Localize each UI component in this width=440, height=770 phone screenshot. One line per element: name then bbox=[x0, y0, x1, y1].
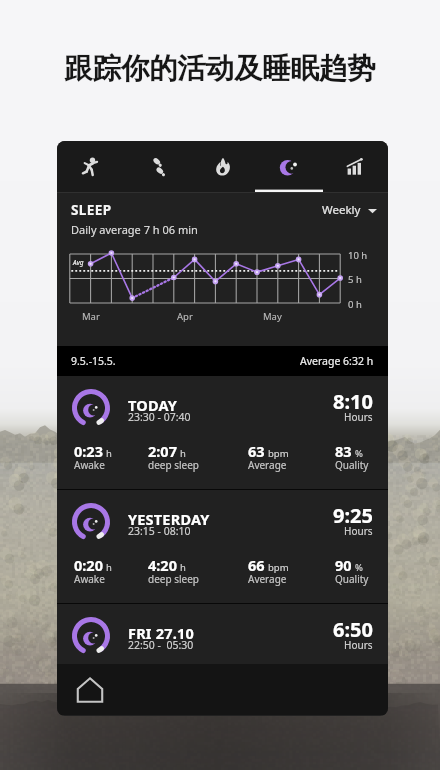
button[interactable]: Steps bbox=[124, 141, 190, 193]
button[interactable]: Calories bbox=[190, 141, 256, 193]
button[interactable]: 9.5.-15.5. bbox=[57, 346, 388, 376]
staticText: 6:50 bbox=[333, 616, 373, 643]
staticText: TODAY bbox=[128, 395, 178, 415]
staticText: May bbox=[263, 310, 282, 323]
button[interactable]: Trends bbox=[322, 141, 388, 193]
staticText: 4:20 bbox=[148, 555, 177, 575]
staticText: Hours bbox=[344, 638, 373, 652]
staticText: SLEEP bbox=[71, 201, 112, 219]
staticText: 2:07 bbox=[148, 441, 177, 461]
staticText: 0 h bbox=[348, 298, 362, 311]
staticText: h bbox=[106, 447, 112, 460]
staticText: Mar bbox=[82, 310, 100, 323]
staticText: 9:25 bbox=[333, 502, 373, 529]
staticText: 0:20 bbox=[74, 555, 103, 575]
staticText: 跟踪你的活动及睡眠趋势 bbox=[64, 51, 376, 87]
staticText: Awake bbox=[74, 572, 105, 586]
staticText: Awake bbox=[74, 458, 105, 472]
staticText: Quality bbox=[335, 572, 369, 586]
staticText: Average bbox=[248, 572, 287, 586]
staticText: 23:30 - 07:40 bbox=[128, 410, 191, 424]
staticText: Average bbox=[248, 458, 287, 472]
staticText: % bbox=[355, 447, 363, 460]
staticText: 66 bbox=[248, 555, 265, 575]
button[interactable]: Weekly bbox=[322, 202, 377, 218]
staticText: Hours bbox=[344, 524, 373, 538]
button[interactable]: Exercise bbox=[57, 141, 124, 193]
staticText: % bbox=[355, 561, 363, 574]
button[interactable]: FRI 27.10 bbox=[57, 604, 388, 664]
button[interactable]: Sleep bbox=[256, 141, 322, 193]
staticText: YESTERDAY bbox=[128, 509, 210, 529]
staticText: 5 h bbox=[348, 273, 362, 286]
staticText: h bbox=[106, 561, 112, 574]
staticText: 9.5.-15.5. bbox=[71, 354, 116, 368]
button[interactable]: YESTERDAY bbox=[57, 490, 388, 603]
staticText: 90 bbox=[335, 555, 352, 575]
staticText: deep sleep bbox=[148, 458, 199, 472]
staticText: Weekly bbox=[322, 202, 361, 218]
staticText: deep sleep bbox=[148, 572, 199, 586]
staticText: bpm bbox=[268, 447, 289, 460]
staticText: Avg bbox=[73, 258, 84, 267]
staticText: Daily average 7 h 06 min bbox=[71, 222, 198, 237]
staticText: FRI 27.10 bbox=[128, 623, 194, 643]
staticText: 8:10 bbox=[333, 388, 373, 415]
staticText: h bbox=[180, 561, 186, 574]
staticText: 83 bbox=[335, 441, 352, 461]
staticText: Apr bbox=[177, 310, 193, 323]
staticText: h bbox=[180, 447, 186, 460]
staticText: Quality bbox=[335, 458, 369, 472]
staticText: bpm bbox=[268, 561, 289, 574]
staticText: 23:15 - 08:10 bbox=[128, 524, 191, 538]
staticText: Hours bbox=[344, 410, 373, 424]
staticText: 63 bbox=[248, 441, 265, 461]
button[interactable]: Home bbox=[69, 669, 111, 711]
staticText: 22:50 - 05:30 bbox=[128, 638, 194, 652]
staticText: 0:23 bbox=[74, 441, 103, 461]
staticText: 10 h bbox=[348, 249, 368, 262]
button[interactable]: TODAY bbox=[57, 376, 388, 489]
staticText: Average 6:32 h bbox=[300, 354, 374, 368]
